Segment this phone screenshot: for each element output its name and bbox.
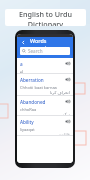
button[interactable]: Play pronunciation [64,60,70,66]
staticText: Words meaning [30,37,70,47]
staticText: chhoRaa [20,107,37,112]
staticText: ترک [63,112,70,116]
staticText: Abandoned [20,99,46,105]
button[interactable]: Back [20,39,27,46]
button[interactable]: Play pronunciation [64,98,70,104]
staticText: liyaaqat [20,127,35,132]
staticText: انحراف کرنا [50,90,70,95]
staticText: a [20,61,23,67]
staticText: اے [20,69,24,74]
button[interactable]: Back [17,37,73,47]
staticText: Search [28,48,43,54]
button[interactable]: Abandoned [17,96,73,116]
button[interactable]: a [17,58,73,74]
staticText: Aberration [20,77,44,83]
button[interactable]: Ability [17,116,73,136]
staticText: Chhotii baat karnaa [20,85,57,90]
staticText: قابلیت [59,132,70,136]
button[interactable]: Play pronunciation [64,118,70,124]
button[interactable]: Search [20,47,70,55]
staticText: English to Urdu Dictionary [5,9,86,26]
staticText: Ability [20,119,34,125]
button[interactable]: Aberration [17,74,73,96]
button[interactable]: Play pronunciation [64,76,70,82]
